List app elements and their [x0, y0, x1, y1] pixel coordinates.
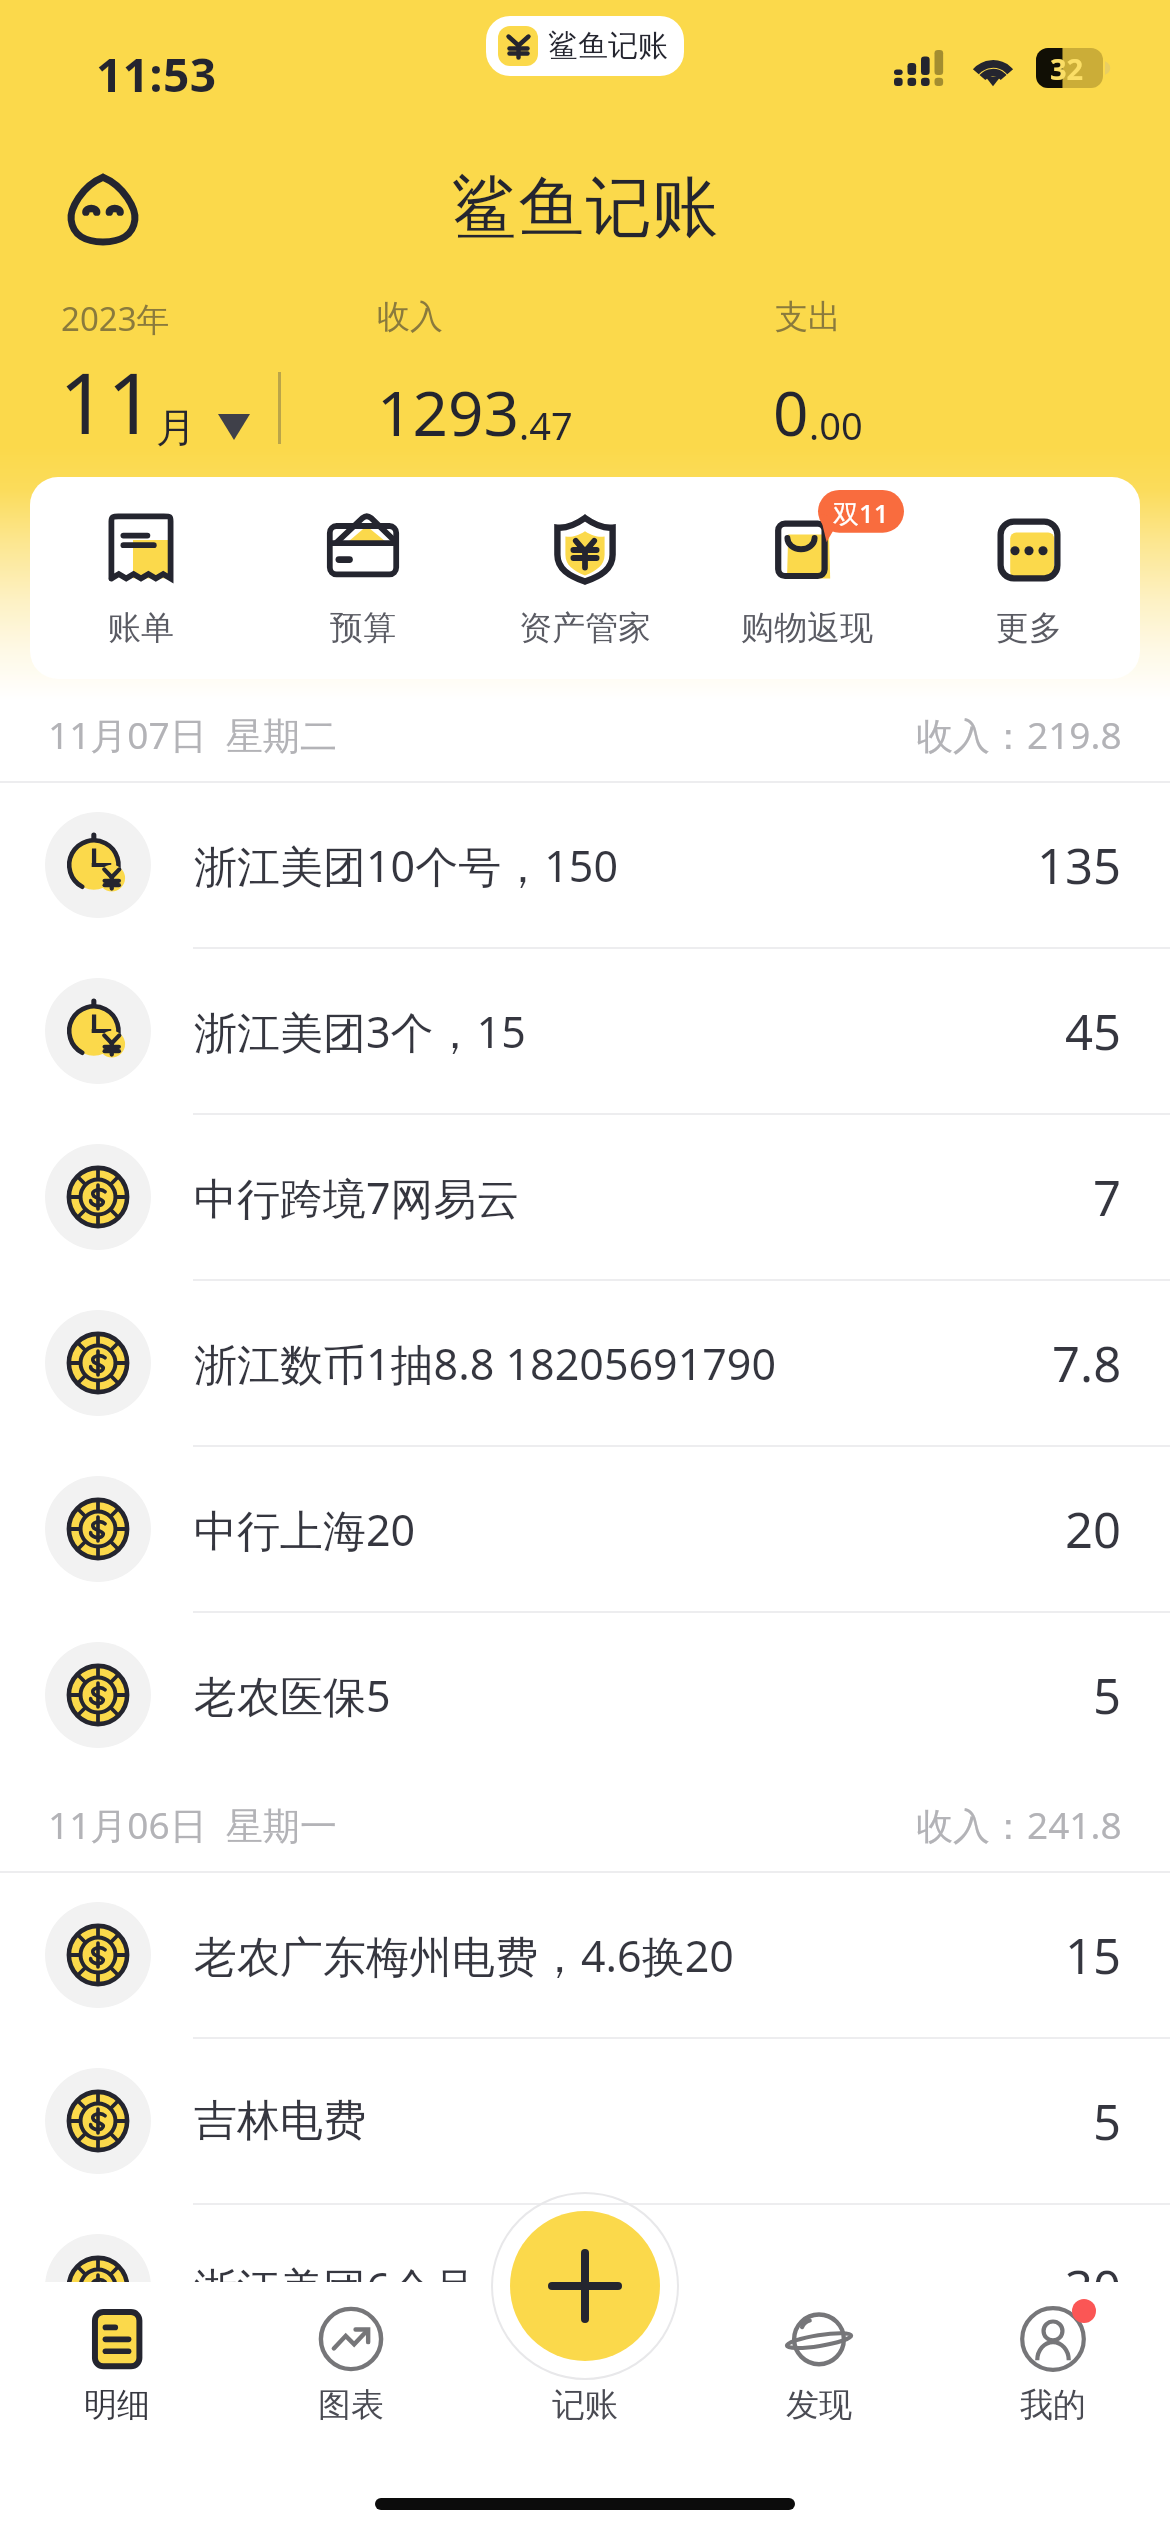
- button[interactable]: Add record: [510, 2211, 660, 2361]
- staticText: 11月06日 星期一: [48, 1799, 337, 1850]
- staticText: 浙江美团10个号，150: [194, 836, 1037, 895]
- button[interactable]: 中行上海20: [0, 1447, 1170, 1611]
- staticText: 老农广东梅州电费，4.6换20: [194, 1926, 1065, 1985]
- staticText: 收入：219.8: [916, 709, 1122, 760]
- staticText: 支出: [775, 296, 841, 338]
- staticText: 30: [1065, 2254, 1122, 2321]
- staticText: 资产管家: [519, 607, 651, 649]
- staticText: 老农医保5: [194, 1666, 1093, 1725]
- staticText: 5: [1093, 2088, 1122, 2155]
- staticText: 2023年: [61, 296, 170, 341]
- button[interactable]: 更多: [918, 505, 1140, 649]
- staticText: 吉林电费: [194, 2094, 1093, 2148]
- staticText: 收入：241.8: [916, 1799, 1122, 1850]
- button[interactable]: 发现: [702, 2282, 936, 2426]
- staticText: 5: [1093, 1662, 1122, 1729]
- staticText: 1293: [377, 370, 519, 454]
- staticText: 20: [1065, 1496, 1122, 1563]
- button[interactable]: 中行跨境7网易云: [0, 1115, 1170, 1279]
- button[interactable]: 浙江数币1抽8.8 18205691790: [0, 1281, 1170, 1445]
- staticText: .00: [809, 399, 863, 451]
- staticText: 发现: [786, 2384, 852, 2426]
- staticText: 预算: [330, 607, 396, 649]
- staticText: 记账: [552, 2384, 618, 2426]
- staticText: 账单: [108, 607, 174, 649]
- button[interactable]: 老农医保5: [0, 1613, 1170, 1777]
- staticText: 图表: [318, 2384, 384, 2426]
- button[interactable]: 浙江美团6个号: [0, 2205, 1170, 2369]
- staticText: 0: [773, 370, 809, 454]
- staticText: 月: [156, 402, 196, 452]
- staticText: 购物返现: [741, 607, 873, 649]
- staticText: 7: [1093, 1164, 1122, 1231]
- staticText: .47: [519, 399, 573, 451]
- button[interactable]: 老农广东梅州电费，4.6换20: [0, 1873, 1170, 2037]
- button[interactable]: 记账: [468, 2282, 702, 2426]
- button[interactable]: 账单: [30, 505, 252, 649]
- staticText: 鲨鱼记账: [451, 166, 719, 249]
- staticText: 32: [1050, 49, 1084, 88]
- staticText: 明细: [84, 2384, 150, 2426]
- staticText: 浙江美团6个号: [194, 2258, 1065, 2317]
- staticText: 11: [59, 344, 156, 458]
- button[interactable]: 浙江美团10个号，150: [0, 783, 1170, 947]
- button[interactable]: 资产管家: [474, 505, 696, 649]
- staticText: 鲨鱼记账: [548, 27, 668, 65]
- button[interactable]: 双11: [696, 505, 918, 649]
- button[interactable]: 预算: [252, 505, 474, 649]
- staticText: 11:53: [96, 43, 217, 106]
- staticText: 收入: [377, 296, 443, 338]
- button[interactable]: App badge: [498, 26, 668, 66]
- staticText: 135: [1037, 832, 1122, 899]
- staticText: 更多: [996, 607, 1062, 649]
- button[interactable]: 11: [59, 344, 250, 458]
- button[interactable]: 浙江美团3个，15: [0, 949, 1170, 1113]
- staticText: 中行跨境7网易云: [194, 1168, 1093, 1227]
- staticText: 中行上海20: [194, 1500, 1065, 1559]
- staticText: 7.8: [1052, 1330, 1122, 1397]
- button[interactable]: 明细: [0, 2282, 234, 2426]
- button[interactable]: 图表: [234, 2282, 468, 2426]
- button[interactable]: 吉林电费: [0, 2039, 1170, 2203]
- staticText: 45: [1065, 998, 1122, 1065]
- staticText: 浙江美团3个，15: [194, 1002, 1065, 1061]
- staticText: 双11: [833, 495, 889, 531]
- staticText: 浙江数币1抽8.8 18205691790: [194, 1334, 1052, 1393]
- staticText: 11月07日 星期二: [48, 709, 337, 760]
- staticText: 15: [1065, 1922, 1122, 1989]
- staticText: 我的: [1020, 2384, 1086, 2426]
- button[interactable]: 我的: [936, 2282, 1170, 2426]
- button[interactable]: Profile: [66, 172, 140, 246]
